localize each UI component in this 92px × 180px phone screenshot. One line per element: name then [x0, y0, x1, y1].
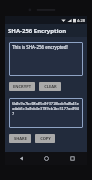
button[interactable]: Recent apps — [62, 152, 82, 165]
staticText: SHA-256 Encryption — [8, 27, 67, 35]
button[interactable]: This is SHA-256 encrypted! — [9, 42, 83, 76]
staticText: SHARE — [14, 136, 27, 141]
staticText: ENCRYPT — [13, 84, 31, 89]
button[interactable]: Back — [11, 152, 31, 165]
button[interactable]: COPY — [35, 134, 55, 143]
staticText: 6b0c9a7bc08a05c0f3718bcb9a0b45eadab5c3a0… — [12, 101, 80, 116]
button[interactable]: ENCRYPT — [9, 82, 35, 91]
button[interactable]: CLEAR — [39, 82, 61, 91]
staticText: 4:28 — [77, 18, 85, 23]
staticText: COPY — [40, 136, 51, 141]
staticText: This is SHA-256 encrypted! — [12, 44, 68, 50]
button[interactable]: Home — [36, 152, 56, 165]
button[interactable]: 6b0c9a7bc08a05c0f3718bcb9a0b45eadab5c3a0… — [9, 98, 83, 128]
staticText: CLEAR — [44, 84, 57, 89]
button[interactable]: SHARE — [9, 134, 31, 143]
